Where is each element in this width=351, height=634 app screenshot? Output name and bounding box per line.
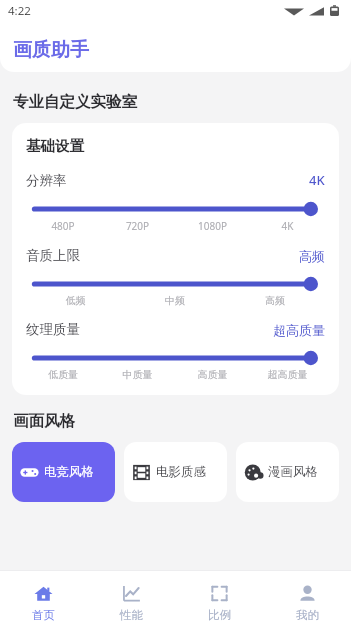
staticText: 4:22 bbox=[8, 3, 31, 19]
staticText: 高频 bbox=[225, 294, 325, 307]
staticText: 漫画风格 bbox=[268, 464, 318, 480]
button[interactable] bbox=[33, 350, 318, 366]
button[interactable]: 比例 bbox=[175, 570, 263, 634]
button[interactable]: 性能 bbox=[87, 570, 175, 634]
staticText: 低质量 bbox=[26, 368, 100, 381]
staticText: 高频 bbox=[299, 248, 325, 264]
button[interactable]: 首页 bbox=[0, 570, 87, 634]
staticText: 中质量 bbox=[100, 368, 175, 381]
button[interactable]: 漫画风格 bbox=[236, 442, 339, 502]
staticText: 中频 bbox=[125, 294, 225, 307]
staticText: 4K bbox=[309, 171, 325, 189]
staticText: 电竞风格 bbox=[44, 464, 94, 480]
staticText: 电影质感 bbox=[156, 464, 206, 480]
button[interactable]: 电影质感 bbox=[124, 442, 227, 502]
staticText: 超高质量 bbox=[250, 368, 325, 381]
button[interactable] bbox=[33, 201, 318, 217]
staticText: 音质上限 bbox=[26, 247, 80, 264]
staticText: 4K bbox=[250, 219, 325, 233]
button[interactable]: 我的 bbox=[263, 570, 351, 634]
staticText: 分辨率 bbox=[26, 172, 67, 189]
staticText: 我的 bbox=[296, 608, 319, 622]
button[interactable] bbox=[33, 276, 318, 292]
staticText: 1080P bbox=[175, 219, 250, 233]
staticText: 高质量 bbox=[175, 368, 250, 381]
staticText: 纹理质量 bbox=[26, 321, 80, 338]
staticText: 画质助手 bbox=[13, 38, 89, 62]
staticText: 基础设置 bbox=[26, 137, 84, 155]
staticText: 低频 bbox=[26, 294, 125, 307]
button[interactable]: 电竞风格 bbox=[12, 442, 115, 502]
staticText: 性能 bbox=[120, 608, 143, 622]
staticText: 比例 bbox=[208, 608, 231, 622]
staticText: 画面风格 bbox=[13, 411, 75, 431]
staticText: 首页 bbox=[32, 608, 55, 622]
staticText: 超高质量 bbox=[273, 322, 325, 338]
staticText: 720P bbox=[100, 219, 175, 233]
staticText: 480P bbox=[26, 219, 100, 233]
staticText: 专业自定义实验室 bbox=[13, 92, 137, 112]
